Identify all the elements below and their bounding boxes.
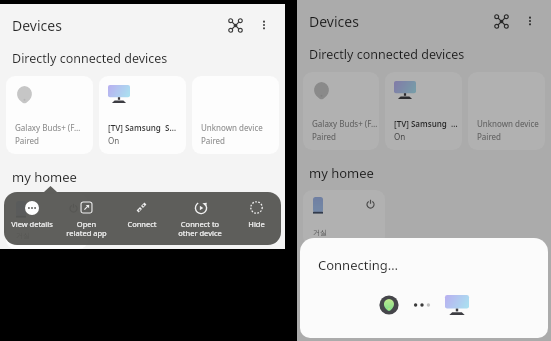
button[interactable]: Power bbox=[303, 190, 385, 246]
button[interactable]: Device hub bbox=[489, 9, 513, 33]
staticText: Paired bbox=[201, 135, 225, 146]
staticText: [TV] Samsung S… bbox=[108, 122, 177, 133]
button[interactable]: Galaxy Buds+ (F… bbox=[303, 72, 379, 150]
button[interactable]: Device hub bbox=[223, 13, 247, 37]
button[interactable]: [TV] Samsung S… bbox=[385, 72, 462, 150]
button[interactable]: More options bbox=[253, 14, 275, 36]
button[interactable]: Unknown device bbox=[192, 76, 279, 154]
button[interactable]: [TV] Samsung S… bbox=[99, 76, 186, 154]
staticText: Connect to other device bbox=[178, 219, 222, 238]
staticText: Galaxy Buds+ (F… bbox=[15, 122, 81, 133]
staticText: Paired bbox=[15, 135, 39, 146]
staticText: On bbox=[394, 131, 406, 142]
button[interactable]: Open related app bbox=[59, 199, 114, 238]
staticText: On bbox=[108, 135, 120, 146]
staticText: Open related app bbox=[66, 219, 107, 238]
staticText: Directly connected devices bbox=[309, 46, 465, 63]
staticText: Galaxy Buds+ (F… bbox=[312, 118, 378, 129]
button[interactable]: Unknown device bbox=[468, 72, 545, 150]
staticText: [TV] Samsung S… bbox=[394, 118, 462, 129]
staticText: my homee bbox=[309, 164, 374, 182]
button[interactable]: View details bbox=[4, 199, 59, 229]
staticText: Connect bbox=[127, 219, 157, 229]
staticText: Unknown device bbox=[477, 118, 539, 129]
button[interactable]: More options bbox=[519, 10, 541, 32]
button[interactable]: Galaxy Buds+ (F… bbox=[6, 76, 93, 154]
staticText: Paired bbox=[477, 131, 501, 142]
staticText: 거실 bbox=[313, 228, 327, 237]
button[interactable]: Hide bbox=[231, 199, 281, 229]
button[interactable]: Connect bbox=[114, 199, 169, 229]
button[interactable]: Power bbox=[6, 194, 88, 249]
button[interactable]: Power bbox=[363, 197, 377, 211]
staticText: Directly connected devices bbox=[12, 50, 168, 67]
staticText: my homee bbox=[12, 168, 77, 186]
staticText: Connecting… bbox=[318, 256, 399, 274]
staticText: Unknown device bbox=[201, 122, 263, 133]
staticText: Hide bbox=[248, 219, 265, 229]
staticText: Devices bbox=[12, 16, 62, 35]
staticText: Devices bbox=[309, 12, 359, 31]
staticText: View details bbox=[11, 219, 53, 229]
staticText: Paired bbox=[312, 131, 336, 142]
button[interactable]: Connect to other device bbox=[169, 199, 231, 238]
